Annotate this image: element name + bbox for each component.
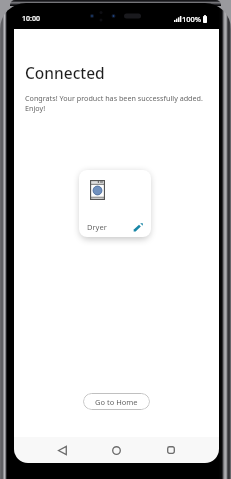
button[interactable]: Dryer <box>79 170 151 237</box>
staticText: Go to Home <box>95 397 138 407</box>
staticText: Dryer <box>87 222 107 232</box>
button[interactable]: Go to Home <box>83 393 150 410</box>
staticText: 10:00 <box>22 14 40 24</box>
button[interactable]: Recents <box>160 439 182 461</box>
staticText: 100% <box>182 14 202 24</box>
button[interactable]: Home <box>105 439 127 461</box>
button[interactable]: Back <box>51 439 73 461</box>
staticText: Connected <box>25 62 105 83</box>
staticText: Congrats! Your product has been successf… <box>25 93 215 113</box>
button[interactable]: Edit <box>133 221 143 231</box>
